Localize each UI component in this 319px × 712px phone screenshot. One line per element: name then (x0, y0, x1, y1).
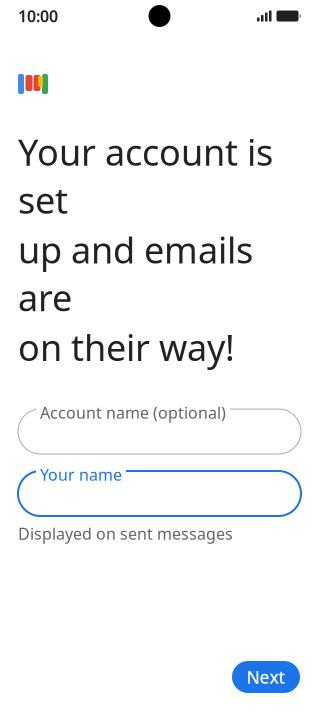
staticText: Your account is set (18, 128, 273, 224)
staticText: Account name (optional) (40, 402, 226, 423)
staticText: Your name (40, 464, 122, 485)
button[interactable]: Next (232, 661, 300, 693)
staticText: Displayed on sent messages (18, 523, 233, 544)
staticText: up and emails are (18, 226, 253, 321)
staticText: Next (246, 665, 285, 688)
staticText: on their way! (18, 323, 235, 371)
staticText: 10:00 (18, 5, 58, 27)
